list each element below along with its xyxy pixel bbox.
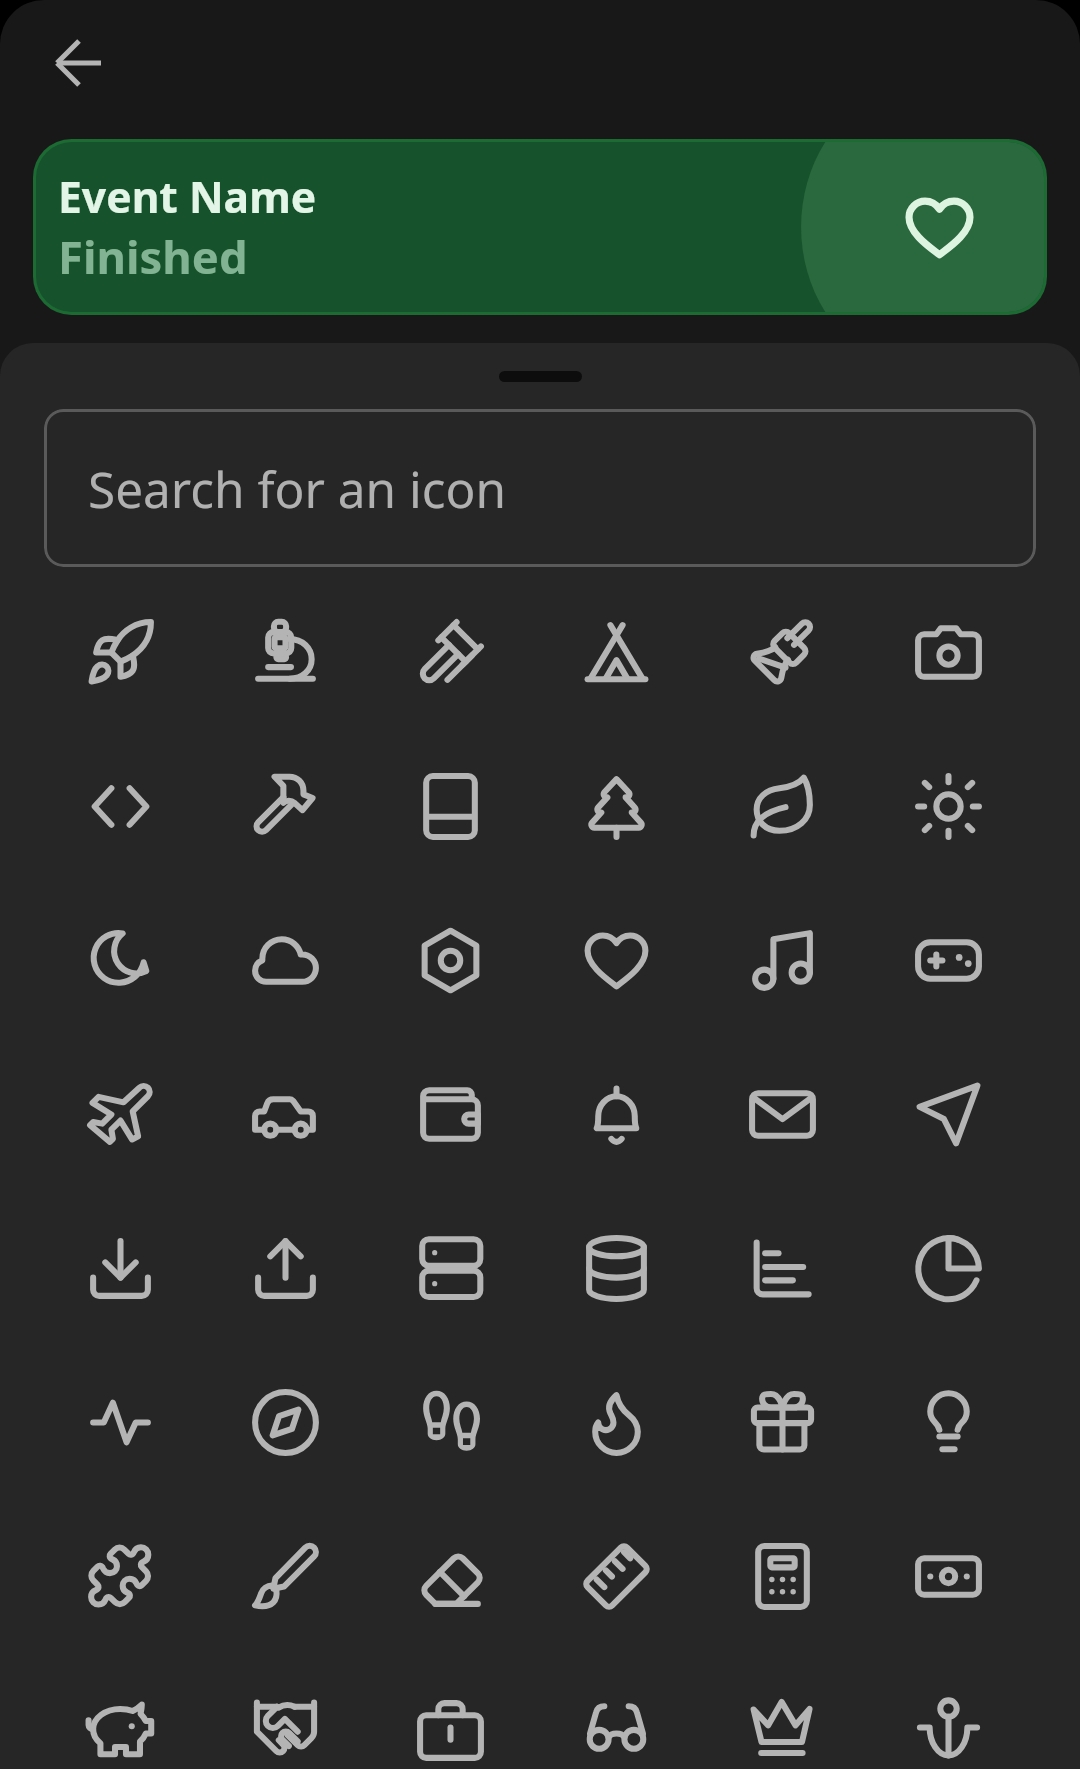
button[interactable]: bell [533, 1037, 699, 1191]
button[interactable]: download [38, 1191, 203, 1345]
button[interactable]: gift [699, 1345, 865, 1499]
button[interactable]: anchor [865, 1653, 1031, 1769]
button[interactable]: piggy [38, 1653, 203, 1769]
button[interactable]: plane [38, 1037, 203, 1191]
button[interactable]: broom [699, 575, 865, 729]
button[interactable]: flame [533, 1345, 699, 1499]
button[interactable]: bulb [865, 1345, 1031, 1499]
button[interactable]: crown [699, 1653, 865, 1769]
button[interactable]: book [368, 729, 533, 883]
button[interactable]: gavel [368, 575, 533, 729]
button[interactable]: microscope [203, 575, 368, 729]
button[interactable]: rocket [38, 575, 203, 729]
staticText: Event Name [58, 167, 317, 225]
button[interactable]: hammer [203, 729, 368, 883]
button[interactable]: heart [533, 883, 699, 1037]
staticText: Search for an icon [88, 455, 507, 522]
button[interactable]: activity [38, 1345, 203, 1499]
button[interactable]: upload [203, 1191, 368, 1345]
staticText: Finished [58, 225, 248, 287]
button[interactable]: Search for an icon [44, 409, 1036, 567]
button[interactable]: camera [865, 575, 1031, 729]
button[interactable]: footprints [368, 1345, 533, 1499]
button[interactable]: sun [865, 729, 1031, 883]
button[interactable]: server [368, 1191, 533, 1345]
button[interactable]: wallet [368, 1037, 533, 1191]
button[interactable]: send [865, 1037, 1031, 1191]
button[interactable]: moon [38, 883, 203, 1037]
button[interactable]: Back [25, 9, 132, 116]
button[interactable]: brush [203, 1499, 368, 1653]
button[interactable]: handshake [203, 1653, 368, 1769]
button[interactable]: eraser [368, 1499, 533, 1653]
button[interactable]: code [38, 729, 203, 883]
button[interactable]: car [203, 1037, 368, 1191]
button[interactable]: banknote [865, 1499, 1031, 1653]
button[interactable]: mail [699, 1037, 865, 1191]
button[interactable]: database [533, 1191, 699, 1345]
button[interactable]: cloud [203, 883, 368, 1037]
button[interactable]: ruler [533, 1499, 699, 1653]
button[interactable]: barchart [699, 1191, 865, 1345]
button[interactable]: leaf [699, 729, 865, 883]
button[interactable]: gamepad [865, 883, 1031, 1037]
button[interactable]: Favorite [892, 180, 986, 274]
button[interactable]: Event Name [36, 142, 1044, 312]
button[interactable]: puzzle [38, 1499, 203, 1653]
button[interactable]: music [699, 883, 865, 1037]
button[interactable]: compass [203, 1345, 368, 1499]
button[interactable]: tent [533, 575, 699, 729]
button[interactable]: tree [533, 729, 699, 883]
button[interactable]: briefcase [368, 1653, 533, 1769]
button[interactable]: glasses [533, 1653, 699, 1769]
button[interactable]: piechart [865, 1191, 1031, 1345]
button[interactable]: calculator [699, 1499, 865, 1653]
button[interactable]: aperture [368, 883, 533, 1037]
